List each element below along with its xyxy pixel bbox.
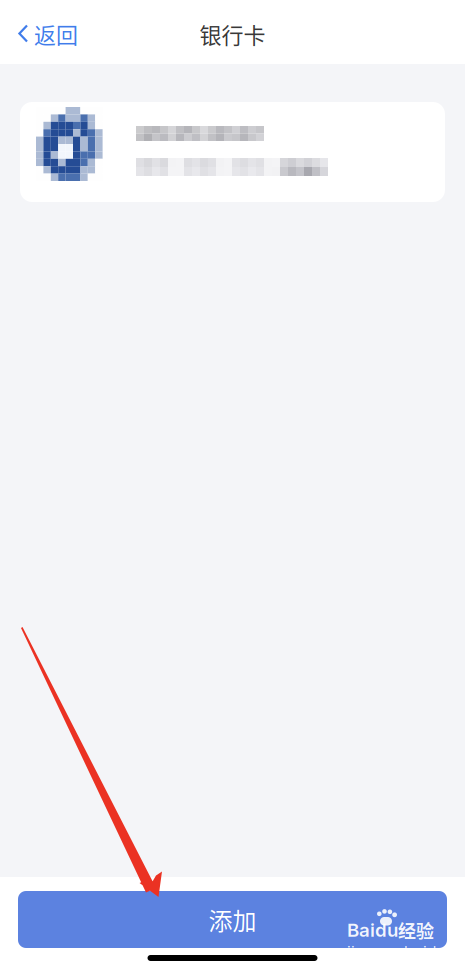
button[interactable]: 添加: [18, 891, 447, 948]
staticText: Baidu: [347, 919, 398, 941]
staticText: 添加: [208, 902, 256, 937]
staticText: 经验: [398, 917, 434, 943]
button[interactable]: 返回: [0, 6, 90, 58]
staticText: 银行卡: [199, 18, 265, 50]
staticText: 返回: [34, 18, 78, 50]
staticText: jingyan.baidu.com: [347, 943, 449, 965]
